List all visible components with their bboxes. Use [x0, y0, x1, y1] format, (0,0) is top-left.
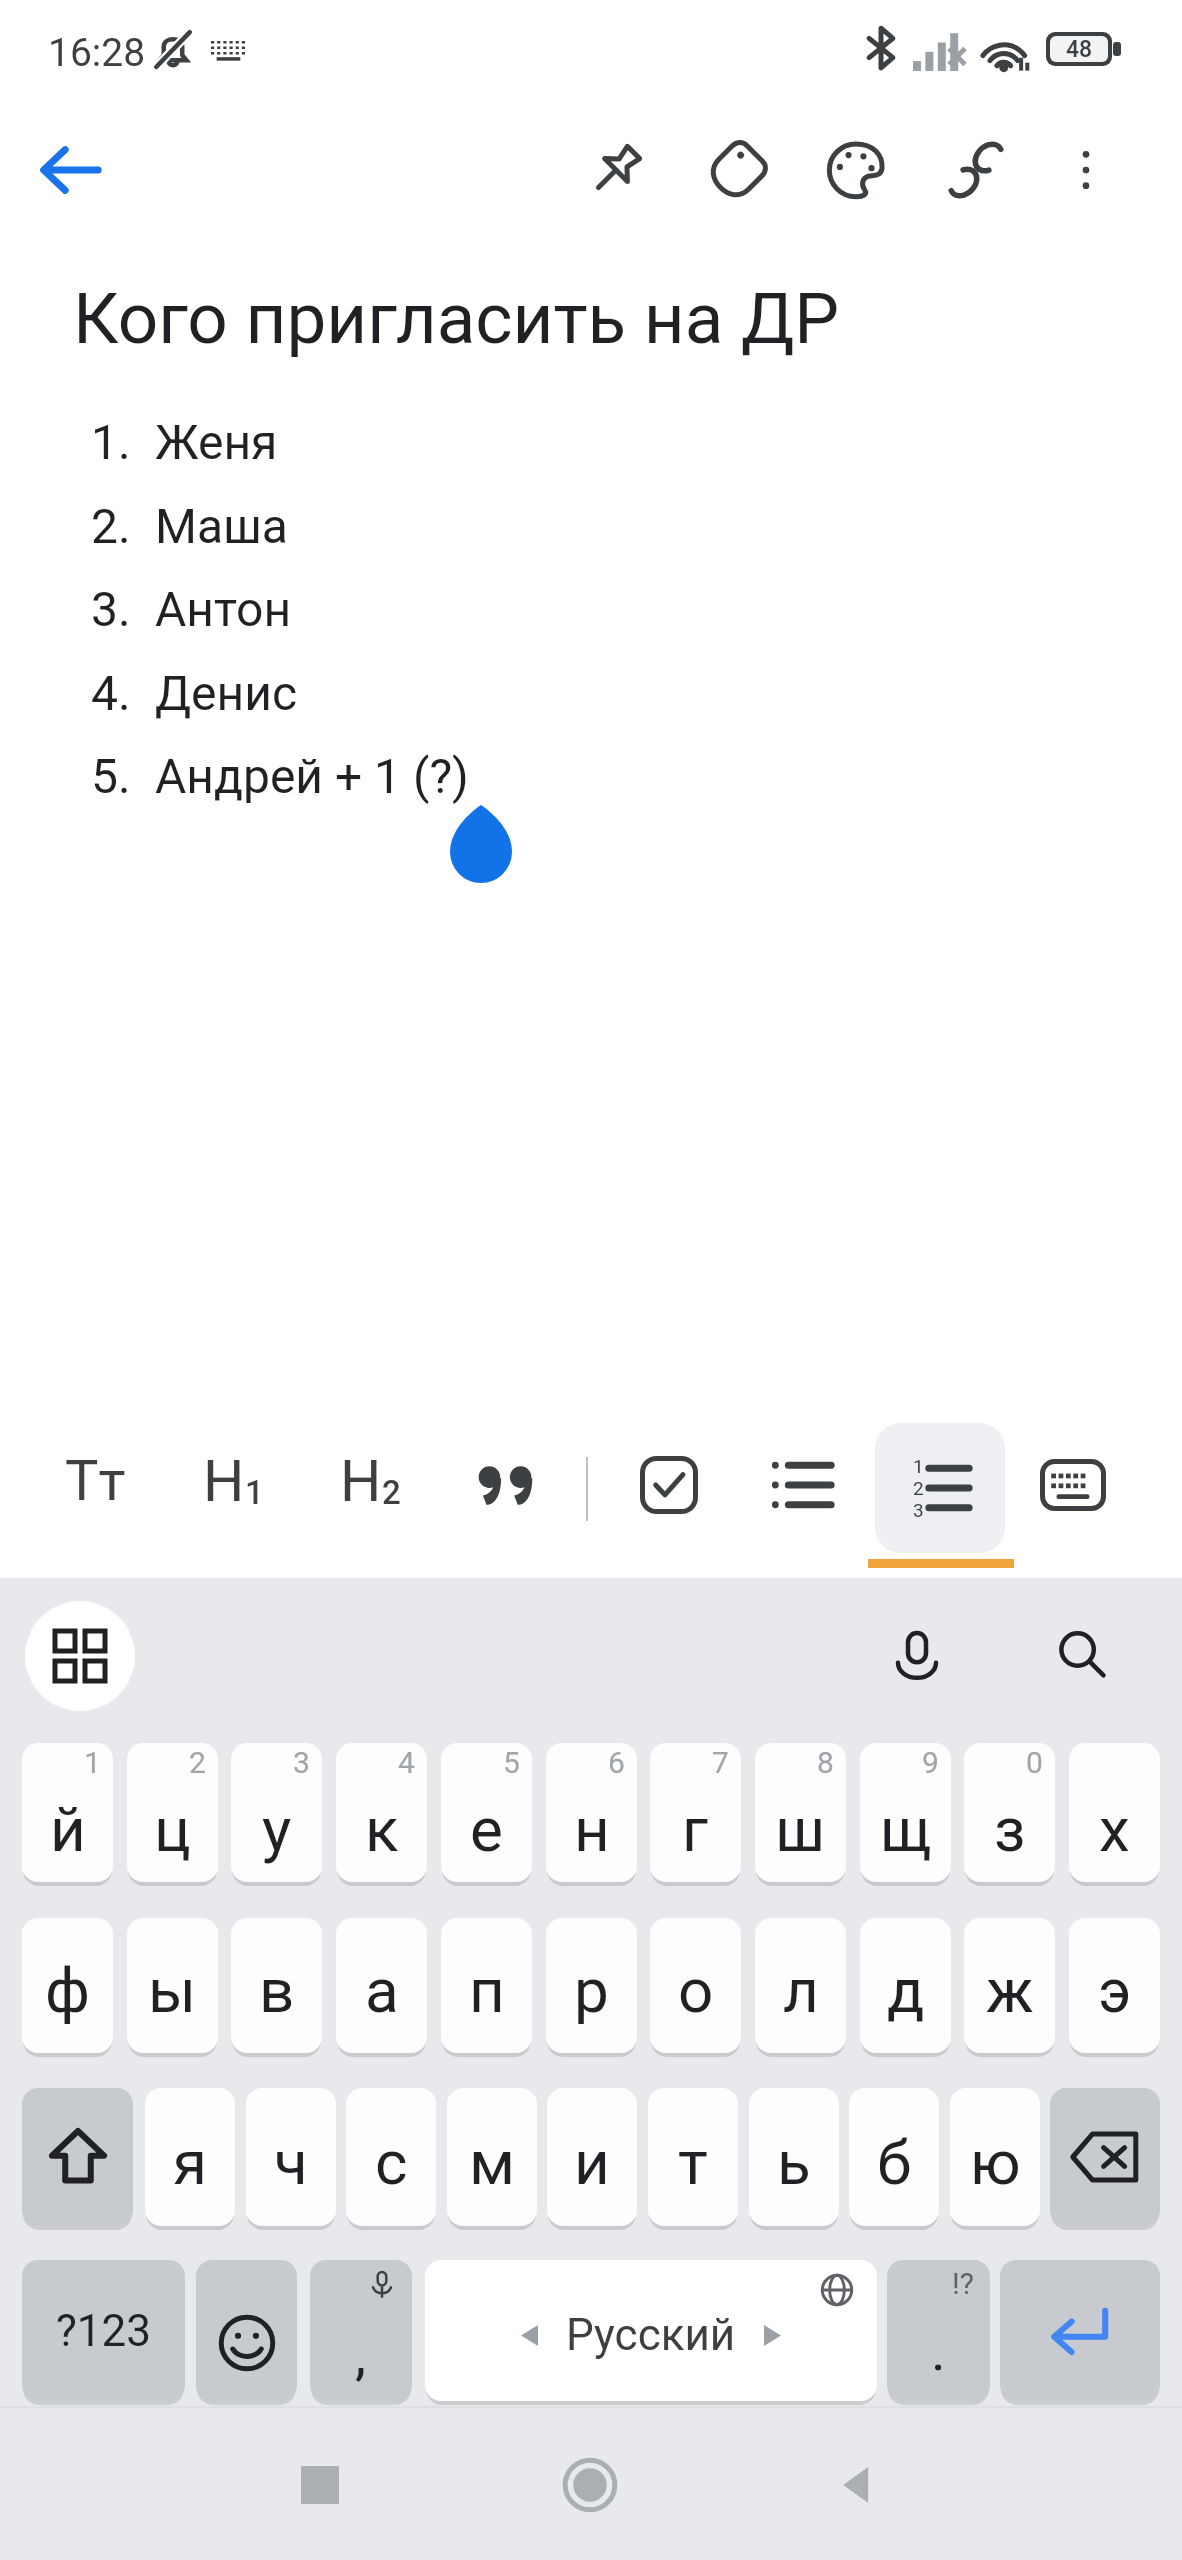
staticText: .	[931, 2318, 946, 2384]
button[interactable]: Emoji	[196, 2260, 297, 2401]
staticText: H	[340, 1447, 382, 1515]
staticText: 9	[922, 1745, 939, 1780]
button[interactable]: в	[231, 1918, 322, 2053]
button[interactable]: Color	[808, 122, 904, 218]
button[interactable]: Keyboard menu	[25, 1601, 135, 1711]
staticText: й	[50, 1793, 86, 1866]
button[interactable]: Period	[887, 2260, 990, 2401]
button[interactable]: Link	[928, 122, 1024, 218]
button[interactable]: 1	[22, 1743, 113, 1882]
staticText: 5	[503, 1745, 520, 1780]
button[interactable]: р	[546, 1918, 637, 2053]
button[interactable]: Comma	[310, 2260, 412, 2401]
button[interactable]: Backspace	[1050, 2088, 1160, 2226]
staticText: е	[470, 1793, 503, 1866]
staticText: ж	[986, 1954, 1034, 2027]
button[interactable]: 5	[441, 1743, 532, 1882]
staticText: Женя	[155, 414, 278, 470]
button[interactable]: м	[447, 2088, 537, 2226]
button[interactable]: Heading 2	[315, 1430, 425, 1540]
button[interactable]: Numbered list	[875, 1423, 1005, 1553]
staticText: н	[574, 1793, 610, 1866]
button[interactable]: ю	[950, 2088, 1040, 2226]
button[interactable]: 3	[231, 1743, 322, 1882]
button[interactable]: Bulleted list	[747, 1430, 857, 1540]
button[interactable]: 2	[127, 1743, 218, 1882]
staticText: 3.	[91, 581, 131, 637]
staticText: 8	[817, 1745, 834, 1780]
staticText: 1	[84, 1745, 101, 1780]
button[interactable]: Hide keyboard	[1018, 1430, 1128, 1540]
button[interactable]: Label	[690, 122, 786, 218]
staticText: ф	[45, 1954, 90, 2027]
staticText: 4	[398, 1745, 415, 1780]
button[interactable]: More options	[1038, 122, 1134, 218]
button[interactable]: я	[145, 2088, 235, 2226]
button[interactable]: ы	[127, 1918, 218, 2053]
staticText: 6	[608, 1745, 625, 1780]
staticText: ч	[274, 2126, 308, 2199]
staticText: !?	[952, 2266, 974, 2301]
staticText: ?123	[56, 2305, 151, 2357]
staticText: б	[877, 2126, 912, 2199]
staticText: Маша	[155, 498, 288, 554]
staticText: 2	[913, 1477, 924, 1499]
button[interactable]: Back	[22, 122, 118, 218]
staticText: э	[1098, 1954, 1132, 2027]
button[interactable]: 9	[860, 1743, 951, 1882]
button[interactable]: 6	[546, 1743, 637, 1882]
staticText: с	[375, 2126, 408, 2199]
button[interactable]: 7	[650, 1743, 741, 1882]
button[interactable]: с	[346, 2088, 436, 2226]
staticText: ц	[154, 1793, 191, 1866]
staticText: о	[678, 1954, 714, 2027]
staticText: д	[887, 1954, 925, 2027]
button[interactable]: ф	[22, 1918, 113, 2053]
staticText: Русский	[566, 2309, 736, 2361]
staticText: ю	[970, 2126, 1021, 2199]
staticText: 2	[382, 1473, 401, 1512]
staticText: Кого пригласить на ДР	[73, 277, 840, 360]
button[interactable]: ж	[964, 1918, 1055, 2053]
button[interactable]: Back	[828, 2455, 888, 2515]
button[interactable]: ч	[246, 2088, 336, 2226]
button[interactable]: Pin	[568, 122, 664, 218]
button[interactable]: 4	[336, 1743, 427, 1882]
button[interactable]: а	[336, 1918, 427, 2053]
button[interactable]: о	[650, 1918, 741, 2053]
button[interactable]: ь	[749, 2088, 839, 2226]
button[interactable]: д	[860, 1918, 951, 2053]
button[interactable]: х	[1069, 1743, 1160, 1882]
button[interactable]: Space	[425, 2260, 877, 2401]
staticText: п	[469, 1954, 505, 2027]
button[interactable]: Enter	[1000, 2260, 1160, 2401]
button[interactable]: э	[1069, 1918, 1160, 2053]
staticText: 3	[293, 1745, 310, 1780]
button[interactable]: Shift	[22, 2088, 133, 2226]
button[interactable]: л	[755, 1918, 846, 2053]
staticText: 2	[189, 1745, 206, 1780]
button[interactable]: Recent apps	[290, 2455, 350, 2515]
staticText: х	[1099, 1793, 1130, 1866]
staticText: и	[574, 2126, 610, 2199]
button[interactable]: и	[547, 2088, 637, 2226]
button[interactable]: п	[441, 1918, 532, 2053]
button[interactable]: ?123	[22, 2260, 185, 2401]
button[interactable]: Home	[560, 2455, 620, 2515]
button[interactable]: т	[648, 2088, 738, 2226]
button[interactable]: б	[849, 2088, 939, 2226]
staticText: 7	[712, 1745, 729, 1780]
button[interactable]: Text style	[40, 1430, 150, 1540]
staticText: Денис	[155, 665, 298, 721]
button[interactable]: Heading 1	[178, 1430, 288, 1540]
button[interactable]: 8	[755, 1743, 846, 1882]
staticText: 1	[913, 1455, 924, 1477]
button[interactable]: Search	[1028, 1601, 1138, 1711]
button[interactable]: 0	[964, 1743, 1055, 1882]
staticText: 1.	[91, 414, 131, 470]
button[interactable]: Checklist	[614, 1430, 724, 1540]
button[interactable]: Voice input	[862, 1601, 972, 1711]
button[interactable]: Quote	[450, 1430, 560, 1540]
staticText: в	[259, 1954, 295, 2027]
staticText: р	[574, 1954, 609, 2027]
